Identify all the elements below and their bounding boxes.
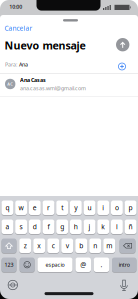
button[interactable]: z [19, 238, 31, 253]
staticText: i [102, 203, 104, 212]
button[interactable]: y [70, 200, 82, 215]
button[interactable]: Emoji [20, 257, 35, 272]
staticText: 123 [4, 261, 13, 268]
staticText: ñ [129, 222, 133, 231]
button[interactable]: Cambiar teclado [8, 280, 18, 290]
button[interactable]: Añadir contacto [118, 62, 126, 71]
button[interactable]: f [42, 219, 54, 234]
button[interactable]: x [33, 238, 45, 253]
staticText: 10:00 [9, 3, 22, 10]
staticText: r [47, 203, 50, 212]
staticText: j [88, 222, 90, 231]
staticText: u [87, 203, 91, 212]
button[interactable]: espacio [37, 257, 72, 272]
staticText: o [115, 203, 119, 212]
staticText: g [60, 222, 64, 231]
staticText: intro [119, 261, 130, 268]
staticText: z [24, 241, 27, 250]
button[interactable]: r [42, 200, 54, 215]
button[interactable]: s [15, 219, 27, 234]
button[interactable]: c [47, 238, 59, 253]
staticText: k [101, 222, 105, 231]
staticText: h [74, 222, 78, 231]
button[interactable]: Cancelar [4, 24, 32, 33]
button[interactable]: AC [5, 75, 135, 93]
staticText: Ana Casas [20, 76, 46, 83]
button[interactable]: k [97, 219, 109, 234]
staticText: b [79, 241, 83, 250]
button[interactable]: b [75, 238, 87, 253]
button[interactable]: a [1, 219, 13, 234]
button[interactable]: t [56, 200, 68, 215]
button[interactable]: e [29, 200, 41, 215]
button[interactable]: u [84, 200, 95, 215]
staticText: q [5, 203, 9, 212]
staticText: c [52, 241, 55, 250]
button[interactable]: v [61, 238, 73, 253]
button[interactable]: ñ [125, 219, 136, 234]
button[interactable]: . [94, 257, 109, 272]
button[interactable]: l [111, 219, 123, 234]
staticText: @ [80, 260, 86, 269]
button[interactable]: Para: [5, 57, 105, 71]
button[interactable]: p [125, 200, 136, 215]
staticText: n [93, 241, 97, 250]
button[interactable]: Borrar [119, 238, 135, 253]
staticText: v [66, 241, 69, 250]
button[interactable]: n [89, 238, 101, 253]
staticText: espacio [45, 261, 64, 268]
staticText: l [116, 222, 118, 231]
button[interactable]: q [1, 200, 13, 215]
button[interactable]: d [29, 219, 41, 234]
staticText: ana.casas.wml@gmail.com [20, 85, 86, 92]
staticText: y [74, 203, 77, 212]
button[interactable]: g [56, 219, 68, 234]
staticText: AC [7, 81, 13, 87]
staticText: d [33, 222, 37, 231]
staticText: Cancelar [4, 24, 32, 33]
staticText: Nuevo mensaje [4, 38, 85, 52]
button[interactable]: w [15, 200, 27, 215]
staticText: x [37, 241, 41, 250]
button[interactable]: h [70, 219, 82, 234]
staticText: . [100, 260, 102, 269]
staticText: m [106, 241, 112, 250]
staticText: f [47, 222, 49, 231]
button[interactable]: m [103, 238, 115, 253]
button[interactable]: Enviar [116, 38, 129, 51]
button[interactable]: o [111, 200, 123, 215]
staticText: s [20, 222, 23, 231]
staticText: t [61, 203, 63, 212]
staticText: a [5, 222, 9, 231]
staticText: Para: [5, 61, 17, 68]
button[interactable]: Mayúsculas [1, 238, 16, 253]
staticText: Ana [19, 61, 28, 68]
staticText: w [19, 203, 24, 212]
button[interactable]: i [97, 200, 109, 215]
staticText: e [33, 203, 37, 212]
button[interactable]: j [84, 219, 95, 234]
button[interactable]: Dictado [119, 280, 129, 291]
button[interactable]: intro [112, 257, 136, 272]
staticText: p [129, 203, 133, 212]
button[interactable]: 123 [1, 257, 16, 272]
button[interactable]: @ [75, 257, 91, 272]
